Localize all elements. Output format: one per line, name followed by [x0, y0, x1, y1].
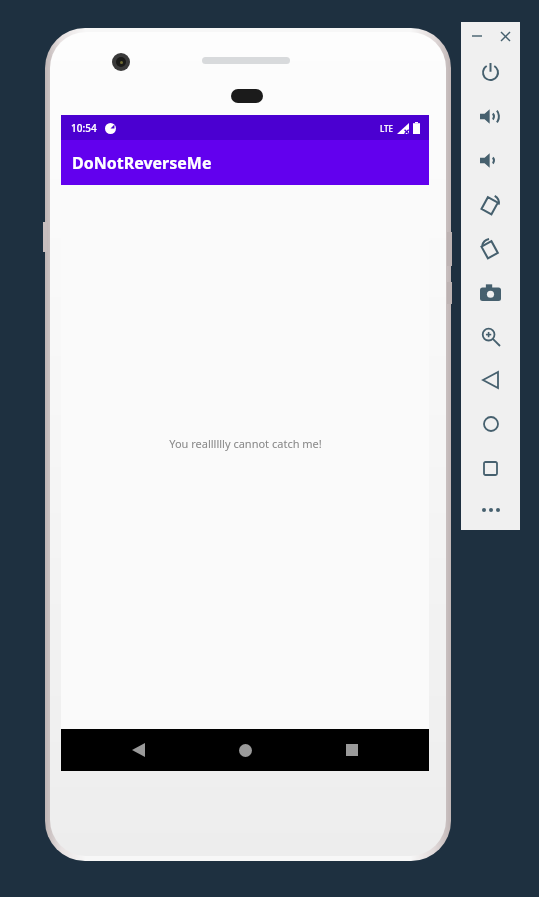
- button[interactable]: Volume down: [461, 138, 520, 182]
- staticText: You realllllly cannot catch me!: [169, 436, 322, 451]
- button[interactable]: Close: [495, 26, 515, 46]
- staticText: DoNotReverseMe: [72, 152, 212, 174]
- staticText: 10:54: [71, 121, 97, 135]
- button[interactable]: More: [461, 490, 520, 530]
- staticText: LTE: [380, 123, 394, 134]
- button[interactable]: Home: [215, 729, 275, 771]
- button[interactable]: Overview: [461, 446, 520, 490]
- button[interactable]: Back: [108, 729, 168, 771]
- button[interactable]: Volume up: [461, 94, 520, 138]
- button[interactable]: Home: [461, 402, 520, 446]
- button[interactable]: Back: [461, 358, 520, 402]
- button[interactable]: DoNotReverseMe: [61, 140, 429, 185]
- button[interactable]: Zoom: [461, 314, 520, 358]
- button[interactable]: Minimize: [467, 26, 487, 46]
- button[interactable]: Recent apps: [322, 729, 382, 771]
- button[interactable]: Rotate right: [461, 226, 520, 270]
- button[interactable]: Power: [461, 50, 520, 94]
- button[interactable]: Rotate left: [461, 182, 520, 226]
- button[interactable]: Screenshot: [461, 270, 520, 314]
